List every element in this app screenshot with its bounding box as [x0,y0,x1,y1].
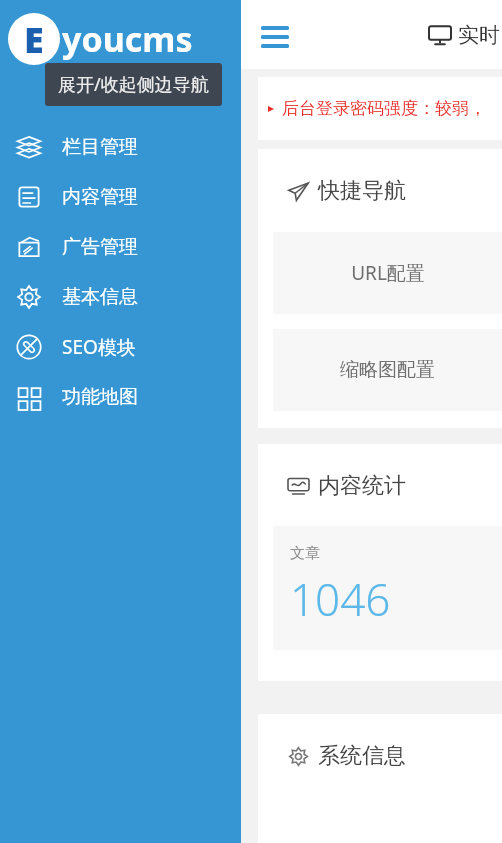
staticText: 展开/收起侧边导航 [58,72,209,97]
staticText: 实时 [458,22,500,48]
staticText: 内容管理 [62,185,138,209]
staticText: 广告管理 [62,235,138,259]
staticText: 基本信息 [62,285,138,309]
button[interactable]: 系统信息 [288,742,406,770]
staticText: 1046 [290,569,391,629]
button[interactable]: E [0,0,241,78]
staticText: URL配置 [351,260,425,286]
staticText: 缩略图配置 [340,358,435,382]
button[interactable]: 内容统计 [288,472,406,500]
button[interactable]: 栏目管理 [0,122,241,172]
button[interactable]: 功能地图 [0,372,241,422]
staticText: SEO模块 [62,334,136,360]
staticText: 内容统计 [318,472,406,500]
button[interactable]: 内容管理 [0,172,241,222]
button[interactable]: 缩略图配置 [273,329,502,411]
staticText: 后台登录密码强度：较弱， [282,98,486,119]
staticText: 栏目管理 [62,135,138,159]
staticText: 系统信息 [318,742,406,770]
button[interactable]: 菜单 [253,13,297,57]
staticText: E [24,15,44,64]
button[interactable]: 文章 [273,526,502,650]
button[interactable]: 实时 [429,22,500,48]
button[interactable]: 基本信息 [0,272,241,322]
staticText: youcms [62,16,193,62]
button[interactable]: URL配置 [273,232,502,314]
staticText: 功能地图 [62,385,138,409]
staticText: 文章 [290,544,320,563]
button[interactable]: 广告管理 [0,222,241,272]
staticText: 快捷导航 [318,177,406,205]
button[interactable]: 快捷导航 [288,177,406,205]
button[interactable]: SEO模块 [0,322,241,372]
